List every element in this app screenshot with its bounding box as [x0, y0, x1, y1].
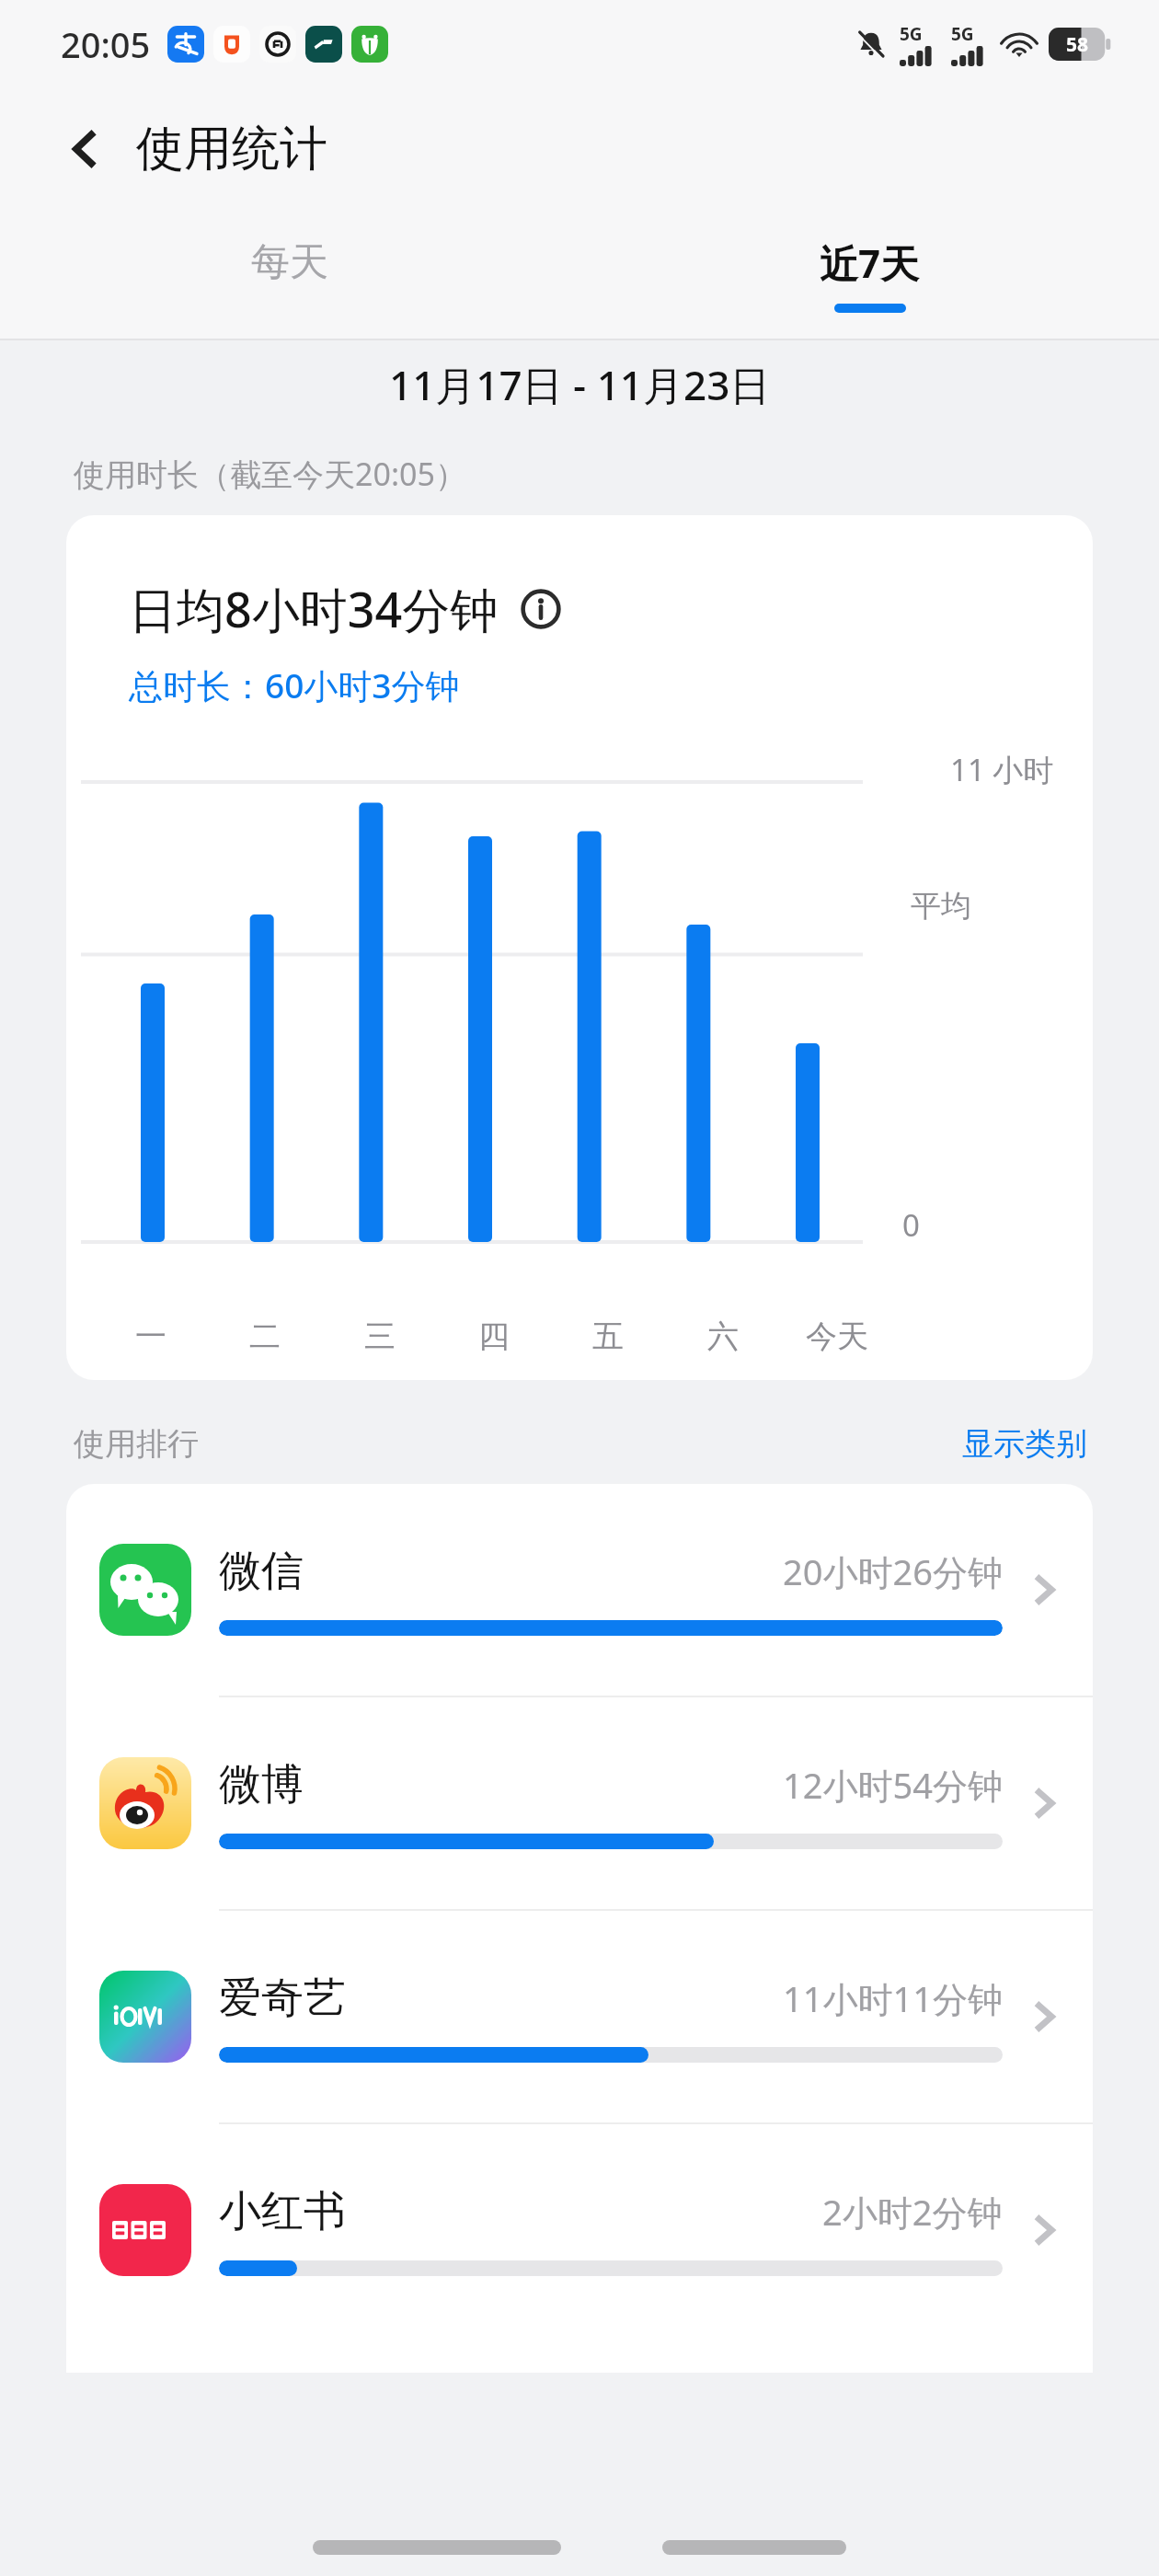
staticText: 二: [249, 1317, 281, 1356]
other: 详情: [1027, 1785, 1063, 1822]
button[interactable]: 显示类别: [962, 1424, 1087, 1464]
staticText: 58: [1066, 31, 1089, 58]
staticText: 日均8小时34分钟: [129, 576, 499, 641]
staticText: 12小时54分钟: [783, 1761, 1003, 1809]
button[interactable]: 近7天: [579, 210, 1159, 339]
staticText: 11 小时: [950, 749, 1054, 790]
staticText: 爱奇艺: [219, 1972, 346, 2025]
staticText: 11月17日 - 11月23日: [389, 357, 771, 412]
staticText: 20:05: [61, 20, 151, 68]
button[interactable]: 返回: [48, 112, 121, 186]
staticText: 平均: [911, 887, 971, 926]
staticText: 小红书: [219, 2185, 346, 2238]
staticText: 今天: [806, 1317, 868, 1356]
other: 详情: [1027, 2212, 1063, 2248]
staticText: 微博: [219, 1758, 304, 1811]
other: 详情: [1027, 1998, 1063, 2035]
button[interactable]: 微信: [66, 1484, 1093, 1697]
staticText: 五: [592, 1317, 624, 1356]
staticText: 0: [902, 1204, 920, 1246]
staticText: 近7天: [820, 236, 920, 289]
button[interactable]: 爱奇艺: [66, 1911, 1093, 2124]
other: 详情: [1027, 1571, 1063, 1608]
staticText: 微信: [219, 1545, 304, 1598]
staticText: 总时长：60小时3分钟: [129, 661, 460, 708]
staticText: 每天: [251, 238, 328, 287]
staticText: 显示类别: [962, 1424, 1087, 1464]
staticText: 一: [135, 1317, 166, 1356]
staticText: 使用时长（截至今天20:05）: [74, 453, 466, 495]
staticText: 使用统计: [136, 119, 327, 179]
staticText: 2小时2分钟: [822, 2188, 1003, 2236]
staticText: 20小时26分钟: [783, 1547, 1003, 1595]
staticText: 三: [364, 1317, 396, 1356]
button[interactable]: 微博: [66, 1697, 1093, 1911]
button[interactable]: 小红书: [66, 2124, 1093, 2336]
button[interactable]: 每天: [0, 210, 579, 339]
staticText: 六: [707, 1317, 739, 1356]
staticText: 11小时11分钟: [783, 1974, 1003, 2022]
button[interactable]: 说明: [519, 587, 563, 631]
staticText: 四: [478, 1317, 510, 1356]
staticText: 使用排行: [74, 1424, 199, 1464]
staticText: 5G: [900, 22, 923, 46]
staticText: 5G: [951, 22, 974, 46]
